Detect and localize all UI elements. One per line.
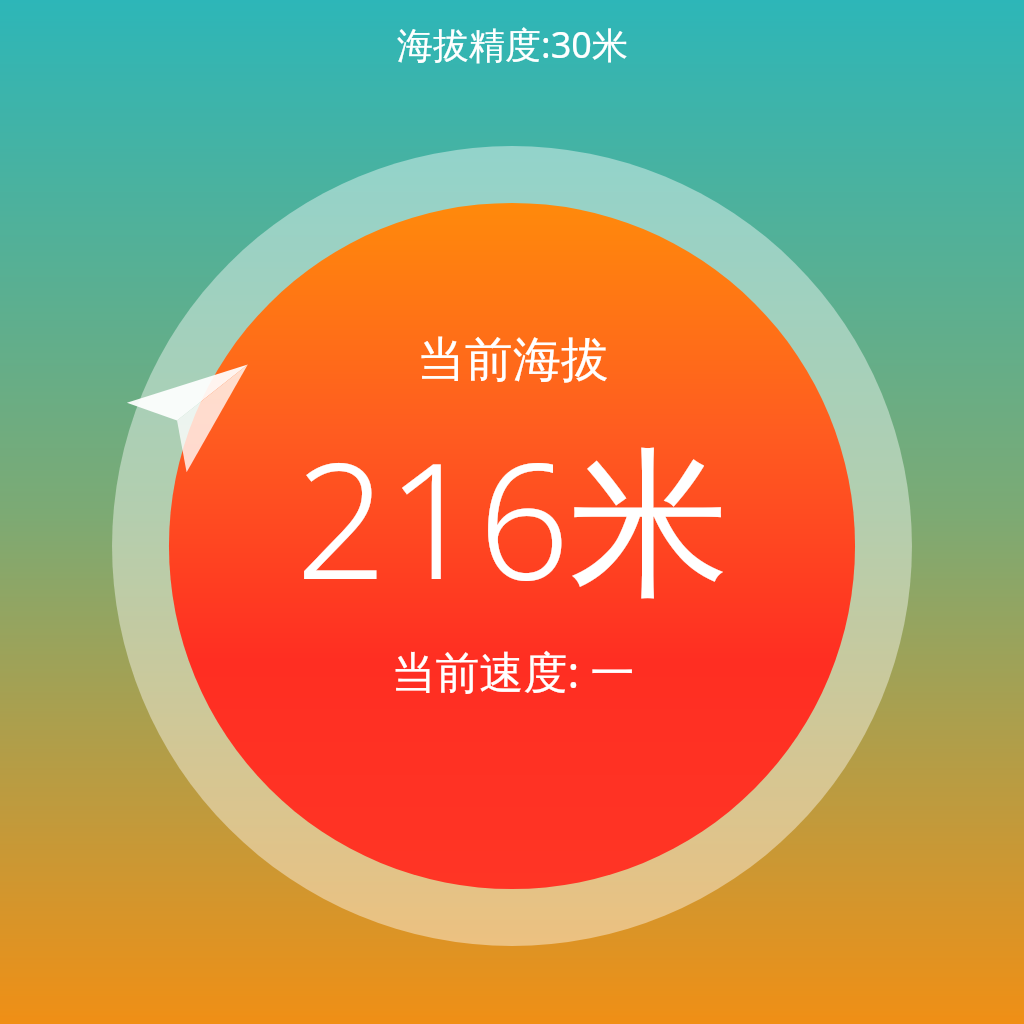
staticText: 216米 bbox=[295, 408, 730, 627]
button[interactable]: Altitude dial bbox=[0, 0, 1024, 1024]
button[interactable]: 海拔精度:30米 bbox=[397, 20, 628, 69]
staticText: 当前海拔 bbox=[417, 330, 609, 390]
staticText: 当前速度: 一 bbox=[391, 641, 635, 701]
